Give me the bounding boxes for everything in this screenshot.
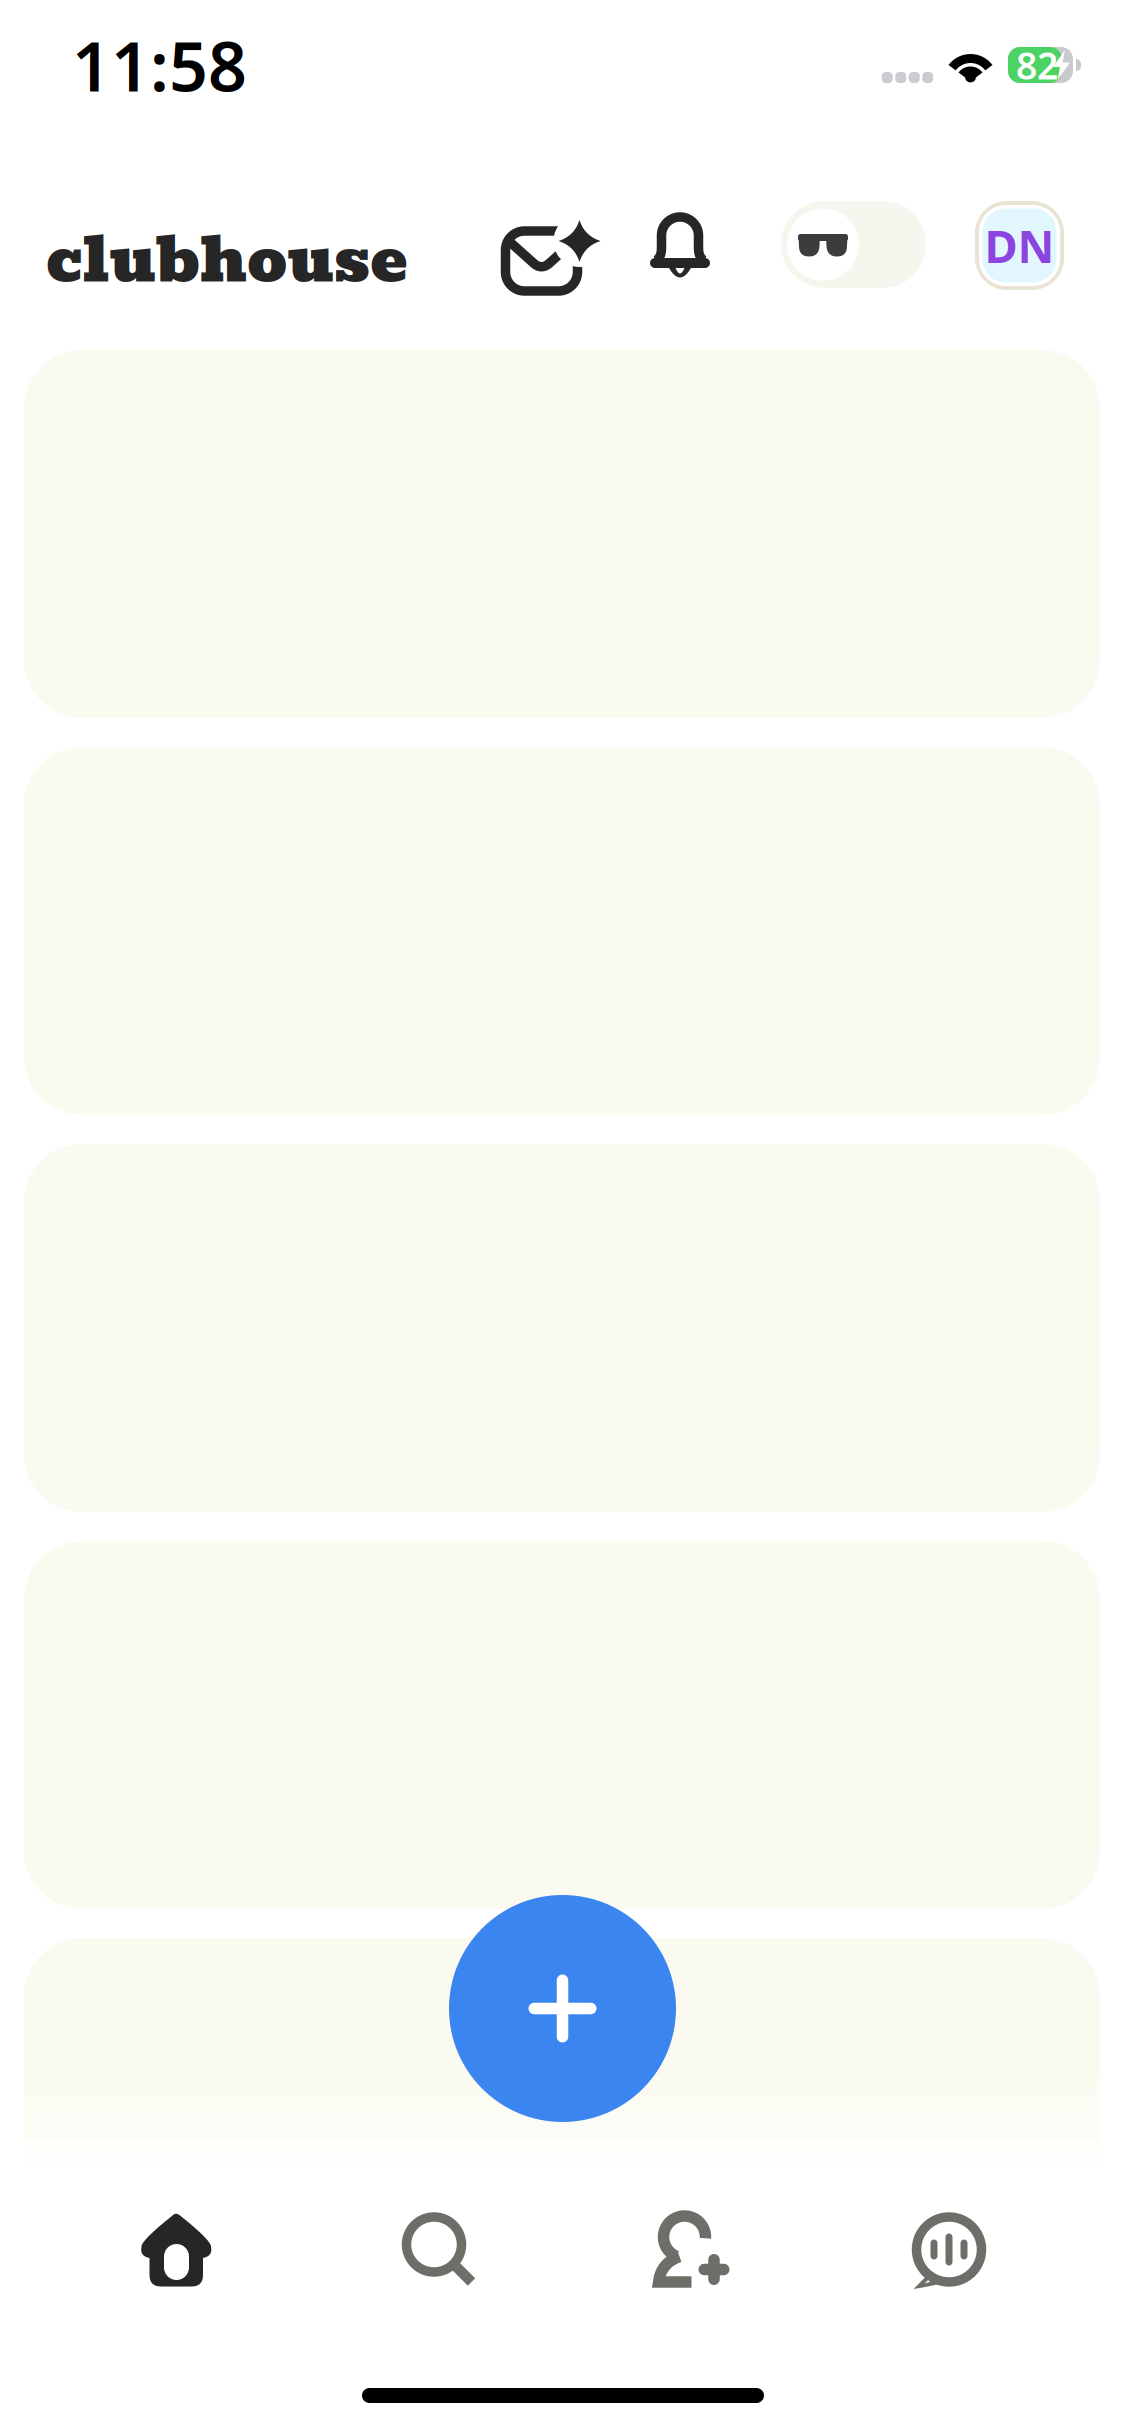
button[interactable]: Home: [48, 2190, 305, 2302]
staticText: 11:58: [72, 20, 247, 110]
button[interactable]: Your profile: [975, 201, 1064, 290]
button[interactable]: Explore: [305, 2190, 562, 2302]
staticText: clubhouse: [46, 209, 408, 310]
button[interactable]: Start a room: [449, 1895, 676, 2122]
button[interactable]: Notifications: [645, 210, 715, 281]
button[interactable]: Backchannel mode: [781, 201, 926, 288]
button[interactable]: Chats: [819, 2190, 1076, 2302]
staticText: 82: [1016, 40, 1058, 90]
button[interactable]: Invites: [494, 204, 589, 282]
button[interactable]: clubhouse: [46, 209, 408, 310]
staticText: DN: [984, 215, 1054, 276]
button[interactable]: Invite friends: [562, 2190, 819, 2302]
